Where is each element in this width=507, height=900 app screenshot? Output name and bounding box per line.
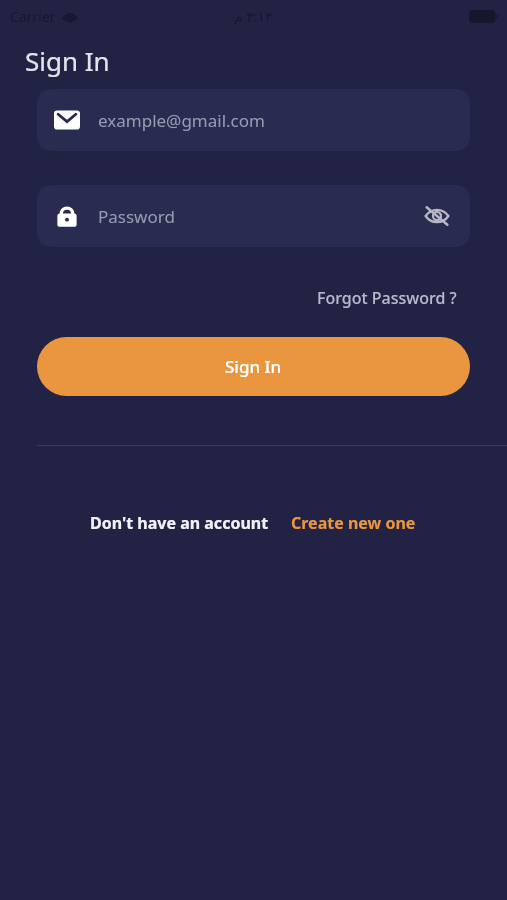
staticText: Create new one (291, 512, 416, 534)
staticText: Sign In (25, 43, 110, 78)
button[interactable]: Show password (420, 201, 454, 231)
staticText: Password (98, 205, 175, 228)
button[interactable]: Forgot Password ? (313, 283, 461, 313)
button[interactable]: example@gmail.com (37, 89, 470, 151)
staticText: Forgot Password ? (317, 287, 457, 309)
staticText: example@gmail.com (98, 109, 265, 132)
staticText: ٣:١٣ م (234, 7, 273, 26)
button[interactable]: Password (37, 185, 470, 247)
button[interactable]: Create new one (289, 508, 418, 538)
button[interactable]: Sign In (37, 337, 470, 396)
staticText: Sign In (225, 355, 282, 378)
staticText: Carrier (10, 7, 56, 26)
staticText: Don't have an account (90, 512, 269, 534)
